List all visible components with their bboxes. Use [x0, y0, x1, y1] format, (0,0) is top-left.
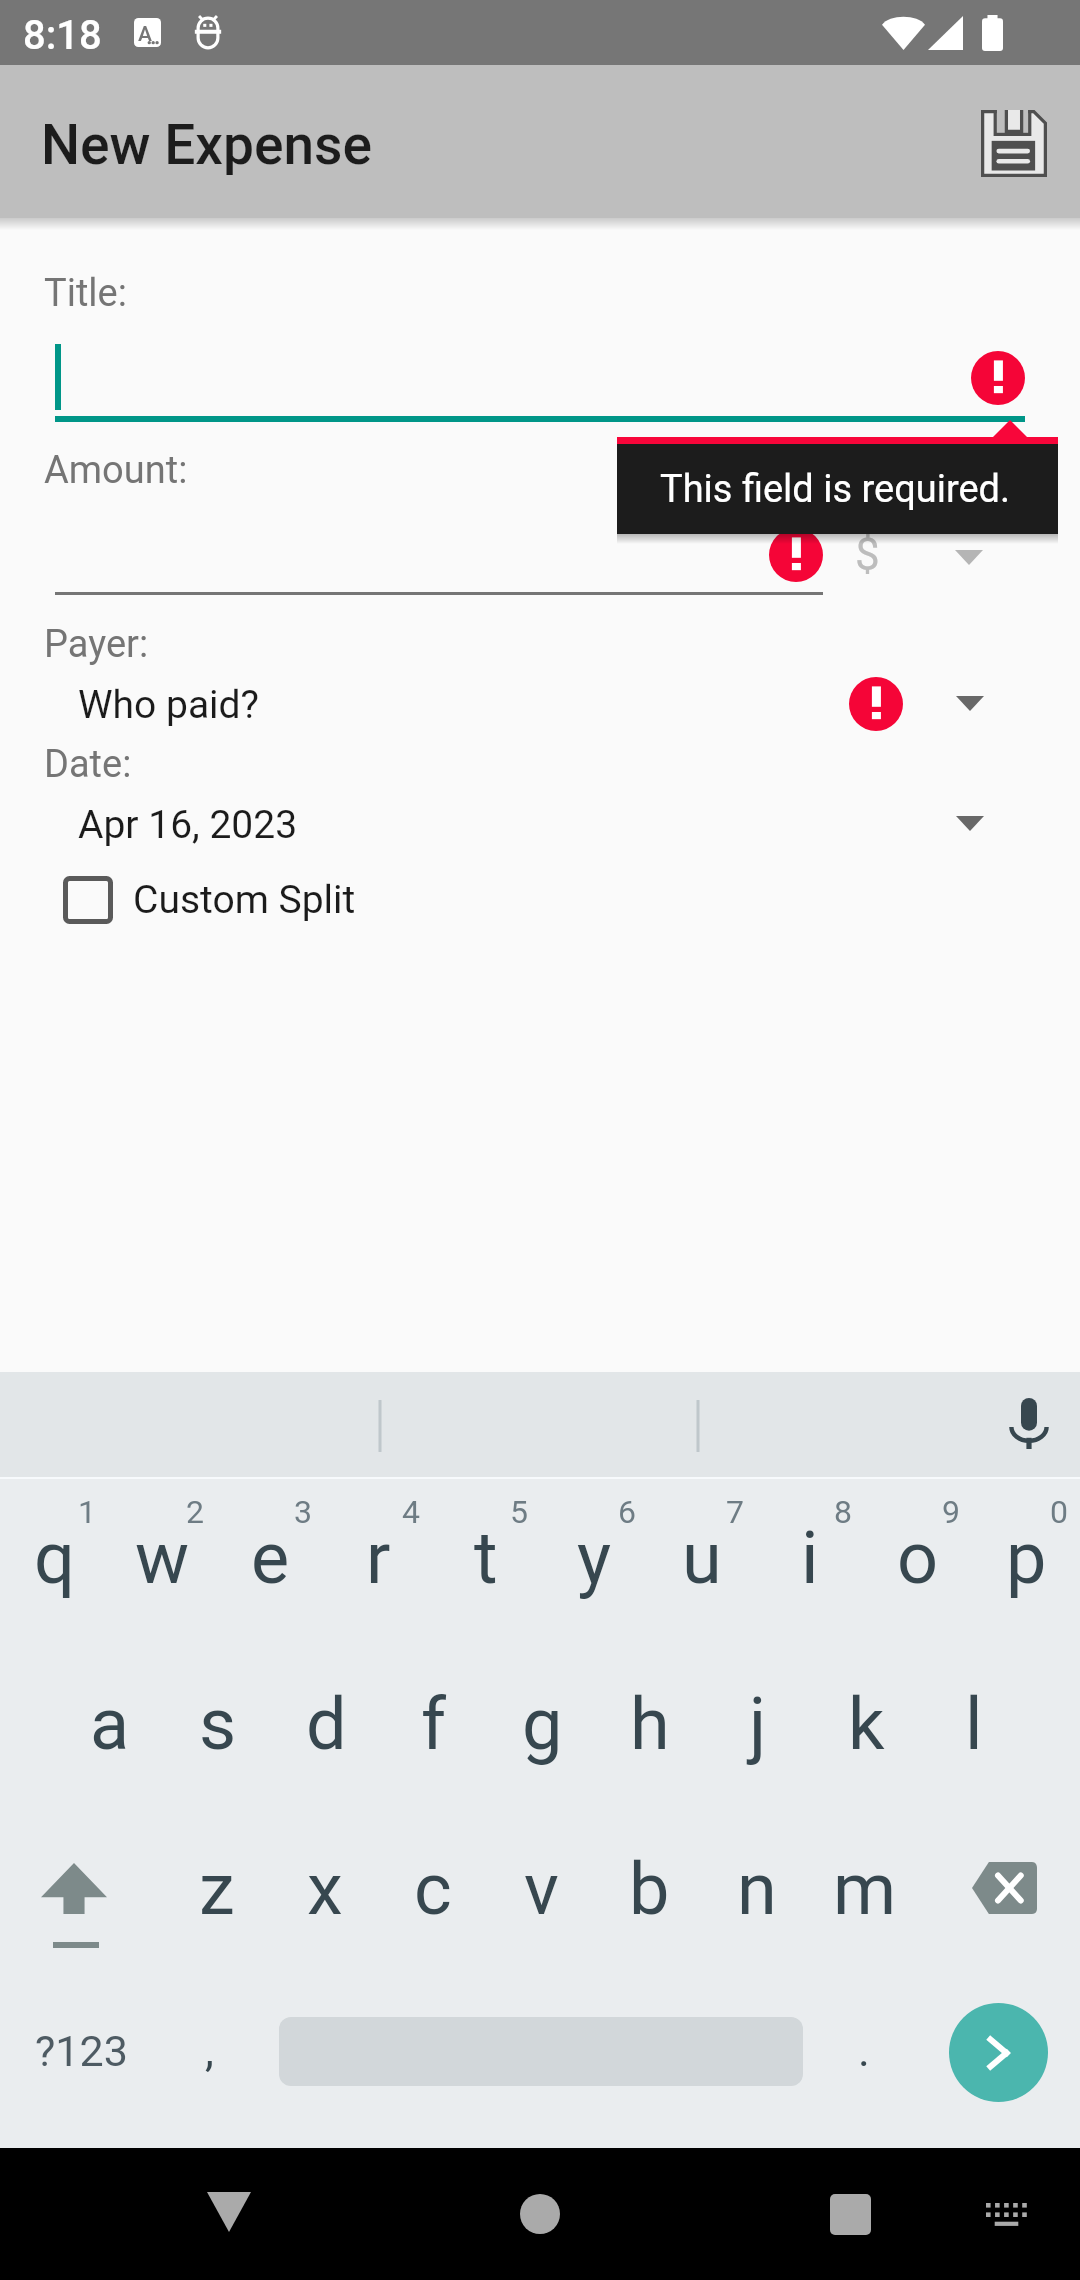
staticText: ?123: [35, 2026, 128, 2076]
button[interactable]: n: [703, 1806, 811, 1956]
button[interactable]: r: [324, 1475, 432, 1625]
button[interactable]: Shift: [0, 1832, 150, 1996]
staticText: f: [421, 1682, 447, 1766]
button[interactable]: k: [812, 1641, 920, 1791]
staticText: t: [474, 1516, 498, 1600]
button[interactable]: w: [108, 1475, 216, 1625]
button[interactable]: c: [379, 1806, 487, 1956]
button[interactable]: b: [595, 1806, 703, 1956]
button[interactable]: Back: [174, 2157, 284, 2267]
button[interactable]: o: [864, 1475, 972, 1625]
button[interactable]: j: [704, 1641, 812, 1791]
staticText: q: [34, 1516, 75, 1600]
button[interactable]: Home: [485, 2159, 595, 2269]
staticText: y: [577, 1516, 612, 1600]
staticText: 7: [726, 1493, 744, 1531]
staticText: 8:18: [23, 12, 102, 59]
button[interactable]: h: [596, 1641, 704, 1791]
button[interactable]: v: [487, 1806, 595, 1956]
staticText: A: [138, 22, 152, 47]
staticText: r: [366, 1516, 391, 1600]
button[interactable]: Recents: [795, 2159, 905, 2269]
staticText: 4: [402, 1493, 420, 1531]
staticText: 9: [942, 1493, 960, 1531]
staticText: h: [630, 1682, 670, 1766]
staticText: n: [737, 1847, 777, 1931]
staticText: .: [858, 2024, 870, 2077]
staticText: 5: [510, 1493, 528, 1531]
staticText: o: [897, 1516, 939, 1600]
staticText: 6: [618, 1493, 636, 1531]
staticText: Title:: [44, 271, 127, 316]
staticText: c: [414, 1847, 452, 1931]
staticText: Payer:: [44, 622, 149, 667]
staticText: $: [855, 528, 880, 580]
button[interactable]: i: [756, 1475, 864, 1625]
staticText: l: [965, 1682, 983, 1766]
button[interactable]: p: [972, 1475, 1080, 1625]
button[interactable]: Next: [949, 2003, 1048, 2102]
staticText: 3: [294, 1493, 312, 1531]
button[interactable]: l: [920, 1641, 1028, 1791]
staticText: New Expense: [41, 113, 372, 177]
button[interactable]: g: [488, 1641, 596, 1791]
staticText: p: [1006, 1516, 1047, 1600]
staticText: k: [848, 1682, 885, 1766]
button[interactable]: e: [216, 1475, 324, 1625]
button[interactable]: y: [540, 1475, 648, 1625]
button[interactable]: d: [272, 1641, 380, 1791]
staticText: a: [90, 1682, 130, 1766]
button[interactable]: ?123: [0, 1996, 160, 2136]
staticText: b: [629, 1847, 670, 1931]
button[interactable]: f: [380, 1641, 488, 1791]
button[interactable]: t: [432, 1475, 540, 1625]
staticText: Date:: [44, 742, 132, 787]
staticText: ,: [205, 2024, 214, 2077]
button[interactable]: a: [56, 1641, 164, 1791]
staticText: 2: [186, 1493, 204, 1531]
button[interactable]: Custom Split: [63, 874, 356, 926]
staticText: u: [682, 1516, 722, 1600]
staticText: v: [524, 1847, 559, 1931]
staticText: Who paid?: [78, 682, 260, 728]
staticText: i: [801, 1516, 819, 1600]
staticText: x: [307, 1847, 343, 1931]
staticText: Amount:: [44, 448, 188, 493]
staticText: 0: [1050, 1493, 1068, 1531]
button[interactable]: ,: [175, 1996, 270, 2136]
staticText: j: [749, 1682, 767, 1766]
staticText: s: [199, 1682, 237, 1766]
staticText: 1: [78, 1493, 96, 1531]
staticText: z: [199, 1847, 235, 1931]
staticText: Custom Split: [133, 877, 356, 923]
staticText: This field is required.: [660, 467, 1011, 512]
button[interactable]: s: [164, 1641, 272, 1791]
button[interactable]: Hide keyboard: [966, 2169, 1046, 2249]
button[interactable]: Backspace: [930, 1832, 1080, 1996]
button[interactable]: m: [811, 1806, 919, 1956]
staticText: d: [306, 1682, 347, 1766]
staticText: g: [522, 1682, 563, 1766]
button[interactable]: q: [0, 1475, 108, 1625]
button[interactable]: Save: [965, 94, 1063, 192]
staticText: w: [135, 1516, 190, 1600]
button[interactable]: x: [271, 1806, 379, 1956]
staticText: 8: [834, 1493, 852, 1531]
staticText: e: [251, 1516, 290, 1600]
button[interactable]: z: [163, 1806, 271, 1956]
staticText: Apr 16, 2023: [78, 802, 298, 848]
staticText: m: [833, 1847, 897, 1931]
button[interactable]: .: [820, 1996, 915, 2136]
button[interactable]: u: [648, 1475, 756, 1625]
